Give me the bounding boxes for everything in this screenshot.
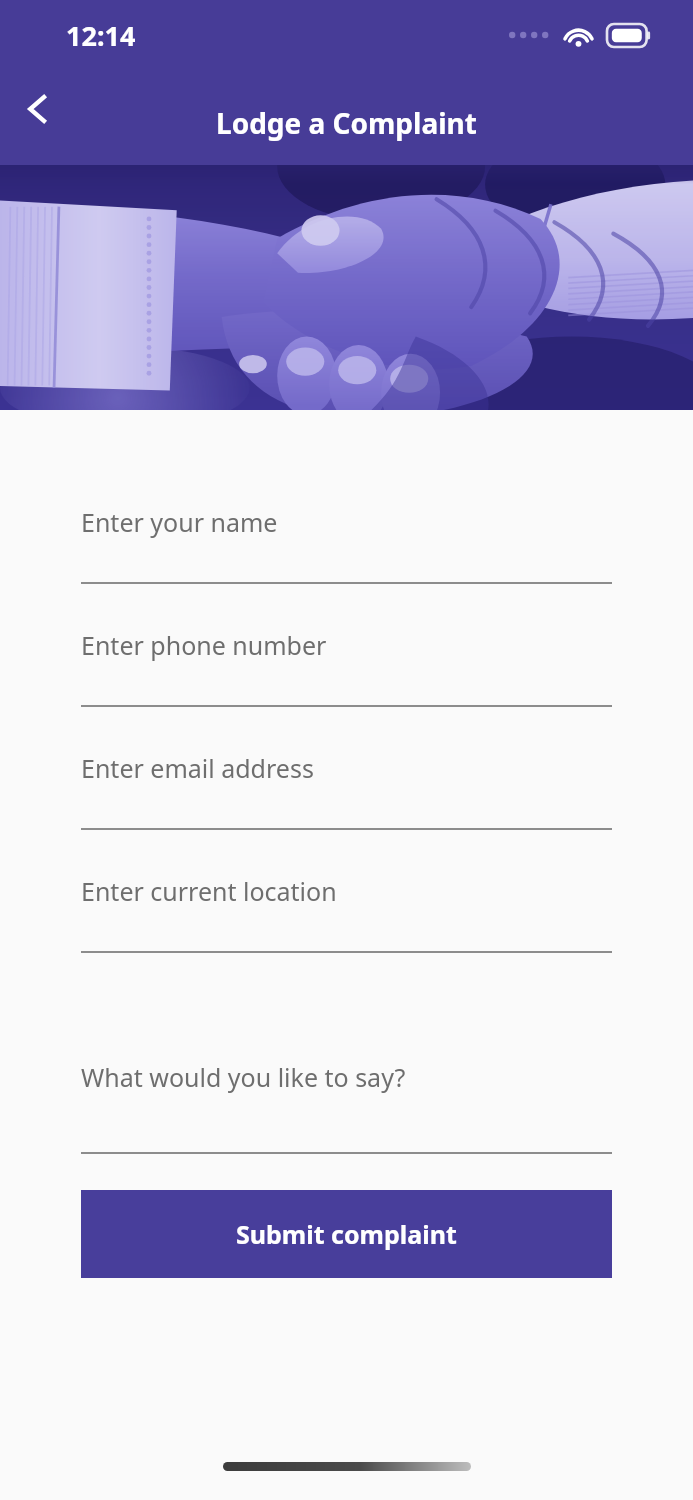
- button[interactable]: Enter your name: [0, 505, 693, 628]
- button[interactable]: Enter phone number: [0, 628, 693, 751]
- button[interactable]: Back: [0, 71, 76, 147]
- staticText: What would you like to say?: [81, 1060, 406, 1094]
- button[interactable]: Submit complaint: [81, 1190, 612, 1278]
- staticText: Submit complaint: [236, 1217, 457, 1251]
- staticText: Enter your name: [81, 505, 278, 539]
- button[interactable]: Enter current location: [0, 874, 693, 997]
- staticText: 12:14: [66, 17, 136, 54]
- staticText: Enter phone number: [81, 628, 327, 662]
- button[interactable]: What would you like to say?: [0, 1060, 693, 1154]
- button[interactable]: Enter email address: [0, 751, 693, 874]
- staticText: Lodge a Complaint: [216, 104, 477, 142]
- staticText: Enter current location: [81, 874, 337, 908]
- staticText: Enter email address: [81, 751, 314, 785]
